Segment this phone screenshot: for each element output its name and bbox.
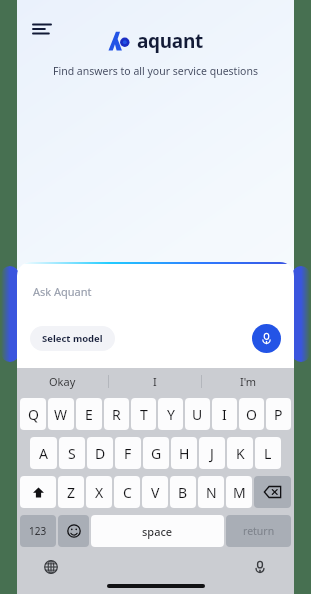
staticText: N <box>206 483 217 502</box>
button[interactable]: D <box>87 437 113 469</box>
button[interactable]: 123 <box>20 515 56 547</box>
staticText: Find answers to all your service questio… <box>53 64 258 78</box>
staticText: U <box>192 405 203 424</box>
staticText: P <box>274 405 283 424</box>
button[interactable]: L <box>255 437 281 469</box>
staticText: Y <box>167 405 175 424</box>
staticText: aquant <box>137 28 203 54</box>
staticText: D <box>95 444 106 463</box>
staticText: C <box>123 483 132 502</box>
button[interactable]: Dictation <box>248 555 272 579</box>
button[interactable]: Voice input <box>252 324 281 353</box>
button[interactable]: Emoji <box>58 515 89 547</box>
staticText: K <box>236 444 245 463</box>
staticText: B <box>178 483 188 502</box>
button[interactable]: P <box>266 398 291 430</box>
button[interactable]: Menu <box>27 14 57 44</box>
staticText: T <box>140 405 148 424</box>
button[interactable]: V <box>142 476 168 508</box>
button[interactable]: E <box>76 398 102 430</box>
button[interactable]: I'm <box>202 368 294 394</box>
staticText: G <box>151 444 162 463</box>
staticText: return <box>243 524 275 538</box>
button[interactable]: A <box>30 437 57 469</box>
button[interactable]: R <box>104 398 129 430</box>
staticText: W <box>54 405 68 424</box>
button[interactable]: Z <box>58 476 84 508</box>
staticText: H <box>179 444 190 463</box>
staticText: R <box>112 405 121 424</box>
staticText: Z <box>67 483 76 502</box>
button[interactable]: space <box>91 515 224 547</box>
button[interactable]: X <box>86 476 112 508</box>
button[interactable]: H <box>171 437 197 469</box>
staticText: L <box>264 444 272 463</box>
button[interactable]: return <box>226 515 291 547</box>
staticText: X <box>95 483 104 502</box>
staticText: E <box>85 405 93 424</box>
staticText: J <box>210 444 214 463</box>
button[interactable]: J <box>199 437 225 469</box>
staticText: M <box>233 483 246 502</box>
staticText: Select model <box>42 332 103 345</box>
button[interactable]: Okay <box>17 368 108 394</box>
button[interactable]: U <box>185 398 210 430</box>
button[interactable]: Select model <box>30 326 115 351</box>
staticText: A <box>39 444 48 463</box>
button[interactable]: Backspace <box>254 476 291 508</box>
staticText: space <box>142 524 173 539</box>
button[interactable]: Q <box>20 398 46 430</box>
button[interactable]: B <box>170 476 196 508</box>
button[interactable]: Change keyboard language <box>39 555 63 579</box>
button[interactable]: N <box>198 476 224 508</box>
button[interactable]: M <box>226 476 252 508</box>
button[interactable]: G <box>143 437 169 469</box>
button[interactable]: T <box>131 398 156 430</box>
staticText: Okay <box>49 374 76 389</box>
button[interactable]: K <box>227 437 253 469</box>
staticText: Q <box>28 405 39 424</box>
staticText: I'm <box>240 374 257 389</box>
staticText: S <box>68 444 76 463</box>
staticText: I <box>222 405 227 424</box>
staticText: F <box>124 444 132 463</box>
button[interactable]: O <box>239 398 264 430</box>
button[interactable]: I <box>212 398 237 430</box>
staticText: I <box>153 374 157 389</box>
button[interactable]: Shift <box>20 476 56 508</box>
button[interactable]: Ask Aquant <box>33 284 92 299</box>
staticText: O <box>246 405 257 424</box>
staticText: 123 <box>29 524 47 538</box>
button[interactable]: F <box>115 437 141 469</box>
button[interactable]: S <box>59 437 85 469</box>
button[interactable]: I <box>109 368 201 394</box>
button[interactable]: C <box>114 476 140 508</box>
button[interactable]: Y <box>158 398 183 430</box>
button[interactable]: W <box>48 398 74 430</box>
staticText: V <box>151 483 160 502</box>
